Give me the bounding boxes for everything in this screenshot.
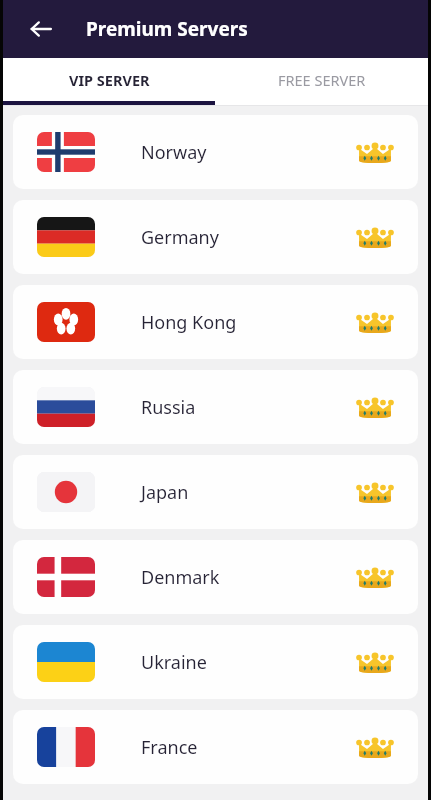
button[interactable]: FREE SERVER [215,58,428,101]
button[interactable]: France [13,710,418,784]
staticText: Norway [141,140,207,165]
other: Premium [356,137,394,167]
staticText: Denmark [141,565,220,590]
button[interactable]: Germany [13,200,418,274]
staticText: Hong Kong [141,310,237,335]
other: Premium [356,222,394,252]
other: Premium [356,647,394,677]
staticText: Ukraine [141,650,207,675]
other: Premium [356,392,394,422]
button[interactable]: Ukraine [13,625,418,699]
other: Premium [356,477,394,507]
button[interactable]: Back [19,7,63,51]
staticText: VIP SERVER [69,70,150,90]
staticText: FREE SERVER [278,70,366,90]
staticText: Russia [141,395,196,420]
button[interactable]: Norway [13,115,418,189]
button[interactable]: Hong Kong [13,285,418,359]
staticText: Germany [141,225,219,250]
button[interactable]: Russia [13,370,418,444]
other: Premium [356,732,394,762]
button[interactable]: Denmark [13,540,418,614]
other: Premium [356,307,394,337]
staticText: France [141,735,198,760]
button[interactable]: Japan [13,455,418,529]
button[interactable]: VIP SERVER [3,58,215,101]
staticText: Japan [141,480,189,505]
other: Premium [356,562,394,592]
staticText: Premium Servers [86,16,248,42]
